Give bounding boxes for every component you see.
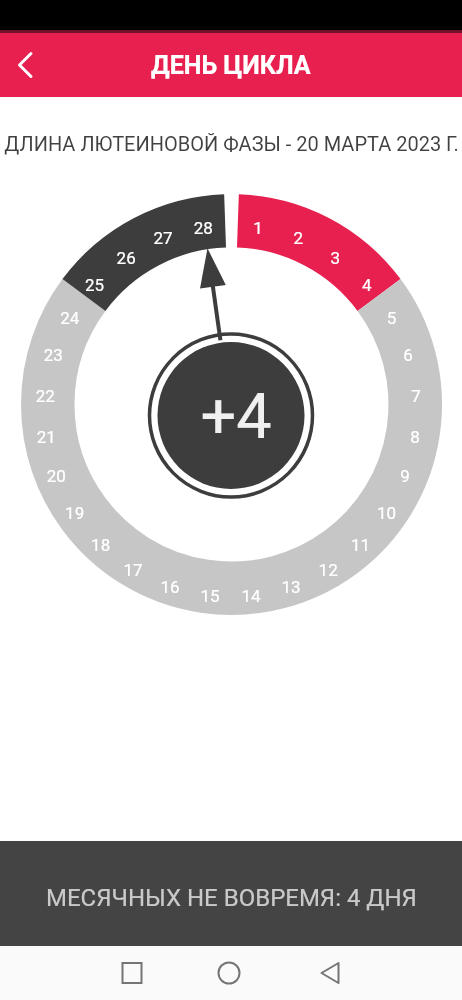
- staticText: МЕСЯЧНЫХ НЕ ВОВРЕМЯ: 4 ДНЯ: [46, 884, 417, 912]
- button[interactable]: [108, 949, 156, 997]
- button[interactable]: [306, 949, 354, 997]
- staticText: ДЛИНА ЛЮТЕИНОВОЙ ФАЗЫ - 20 МАРТА 2023 Г.: [4, 132, 459, 155]
- button[interactable]: [205, 949, 253, 997]
- button[interactable]: [1, 41, 49, 89]
- staticText: ДЕНЬ ЦИКЛА: [151, 51, 311, 80]
